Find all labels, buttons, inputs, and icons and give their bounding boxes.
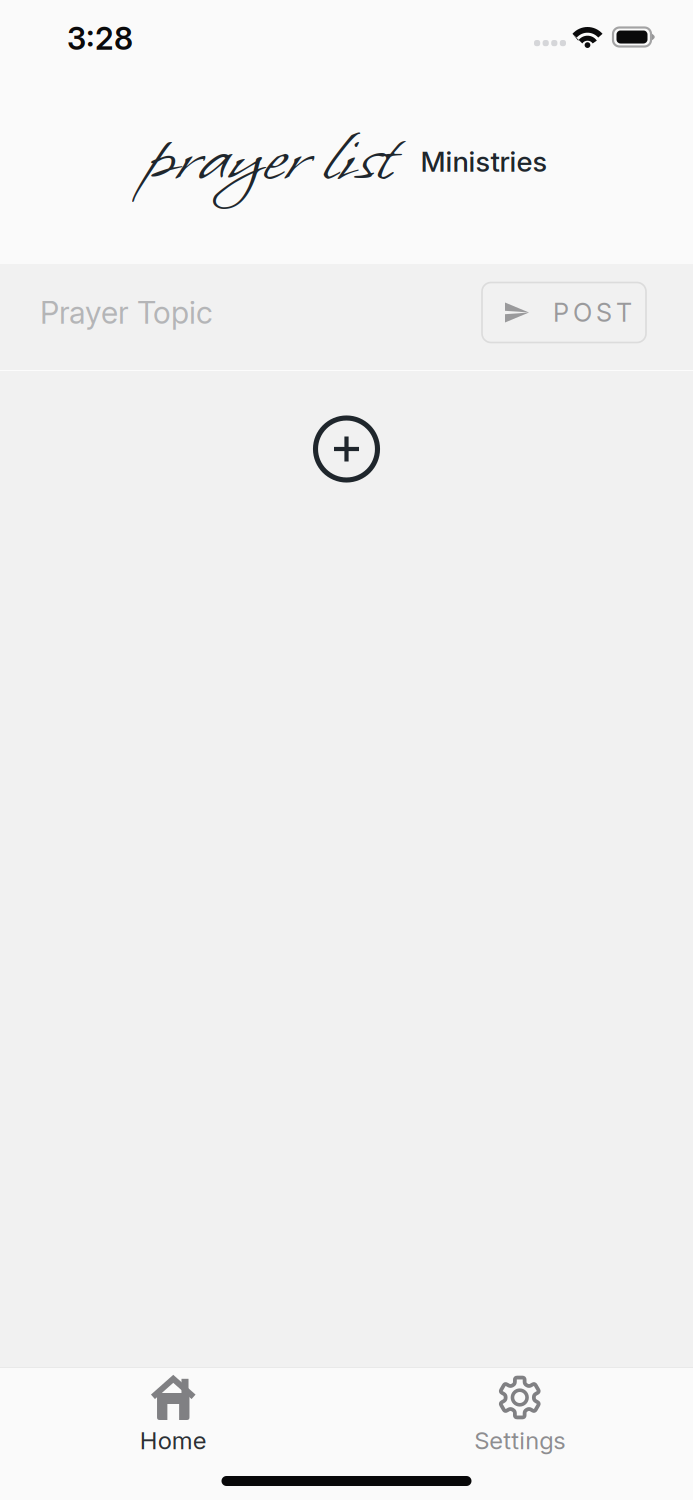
button[interactable]: P O S T — [482, 282, 646, 342]
staticText: Ministries — [420, 145, 547, 179]
staticText: prayer list — [145, 106, 394, 212]
staticText: Settings — [474, 1426, 565, 1455]
staticText: Home — [140, 1426, 207, 1455]
staticText: Prayer Topic — [40, 294, 213, 331]
staticText: P O S T — [553, 297, 632, 328]
staticText: 3:28 — [67, 20, 133, 57]
button[interactable]: Home — [0, 1368, 346, 1455]
button[interactable]: Add prayer — [304, 407, 388, 491]
button[interactable]: Settings — [346, 1368, 693, 1455]
